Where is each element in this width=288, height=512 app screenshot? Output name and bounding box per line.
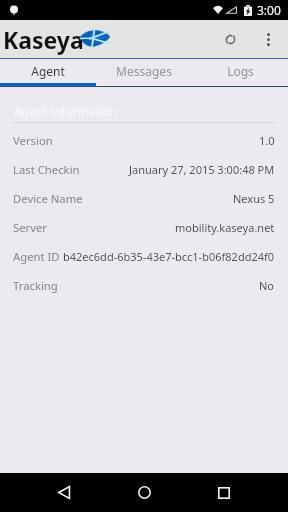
button[interactable]: Recent apps bbox=[204, 473, 244, 512]
button[interactable]: Server bbox=[0, 213, 288, 242]
staticText: Nexus 5 bbox=[233, 191, 275, 206]
button[interactable]: Home bbox=[124, 473, 164, 512]
button[interactable]: Agent bbox=[0, 59, 96, 83]
staticText: Agent bbox=[31, 63, 65, 79]
staticText: No bbox=[259, 278, 275, 293]
button[interactable]: Agent ID bbox=[0, 242, 288, 271]
button[interactable]: Device Name bbox=[0, 184, 288, 213]
staticText: mobility.kaseya.net bbox=[175, 220, 275, 235]
button[interactable]: More options bbox=[254, 25, 282, 53]
button[interactable]: Back bbox=[44, 473, 84, 512]
staticText: 1.0 bbox=[259, 133, 275, 148]
staticText: Tracking bbox=[13, 278, 58, 293]
button[interactable]: Last Checkin bbox=[0, 155, 288, 184]
staticText: Device Name bbox=[13, 191, 83, 206]
staticText: Logs bbox=[227, 63, 254, 79]
button[interactable]: Messages bbox=[96, 59, 192, 83]
button[interactable]: Logs bbox=[192, 59, 288, 83]
staticText: January 27, 2015 3:00:48 PM bbox=[129, 162, 275, 177]
button[interactable]: Tracking bbox=[0, 271, 288, 300]
staticText: Messages bbox=[116, 63, 172, 79]
staticText: Version bbox=[13, 133, 53, 148]
button[interactable]: Refresh bbox=[216, 25, 244, 53]
staticText: Agent Information bbox=[14, 103, 117, 119]
staticText: Agent ID bbox=[13, 249, 60, 264]
staticText: b42ec6dd-6b35-43e7-bcc1-b06f82dd24f0 bbox=[63, 249, 275, 264]
button[interactable]: Version bbox=[0, 126, 288, 155]
staticText: 3:00 bbox=[257, 2, 281, 18]
staticText: Server bbox=[13, 220, 48, 235]
staticText: Last Checkin bbox=[13, 162, 80, 177]
staticText: Kaseya bbox=[3, 24, 84, 55]
